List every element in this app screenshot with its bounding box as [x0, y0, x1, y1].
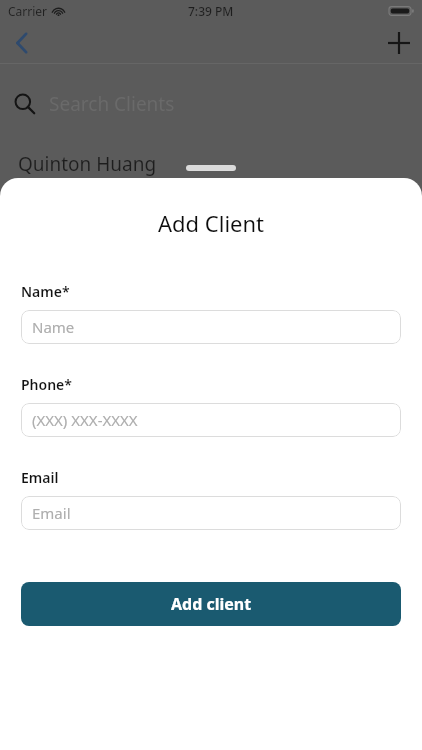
staticText: Phone* [21, 375, 72, 394]
staticText: Quinton Huang [18, 151, 157, 177]
staticText: Email [21, 468, 59, 487]
button[interactable]: Quinton Huang [0, 144, 422, 184]
button[interactable]: (XXX) XXX-XXXX [21, 403, 401, 437]
button[interactable]: Add [376, 22, 422, 63]
staticText: 7:39 PM [188, 3, 234, 19]
staticText: Name* [21, 282, 70, 301]
staticText: Add client [171, 593, 252, 615]
button[interactable]: Add client [21, 582, 401, 626]
button[interactable]: Email [21, 496, 401, 530]
staticText: Carrier [8, 3, 48, 19]
button[interactable]: Back [0, 22, 44, 63]
staticText: Add Client [0, 208, 422, 238]
button[interactable]: Name [21, 310, 401, 344]
staticText: Email [32, 503, 71, 523]
staticText: Search Clients [49, 91, 175, 117]
staticText: (XXX) XXX-XXXX [32, 410, 138, 430]
staticText: Name [32, 317, 75, 337]
